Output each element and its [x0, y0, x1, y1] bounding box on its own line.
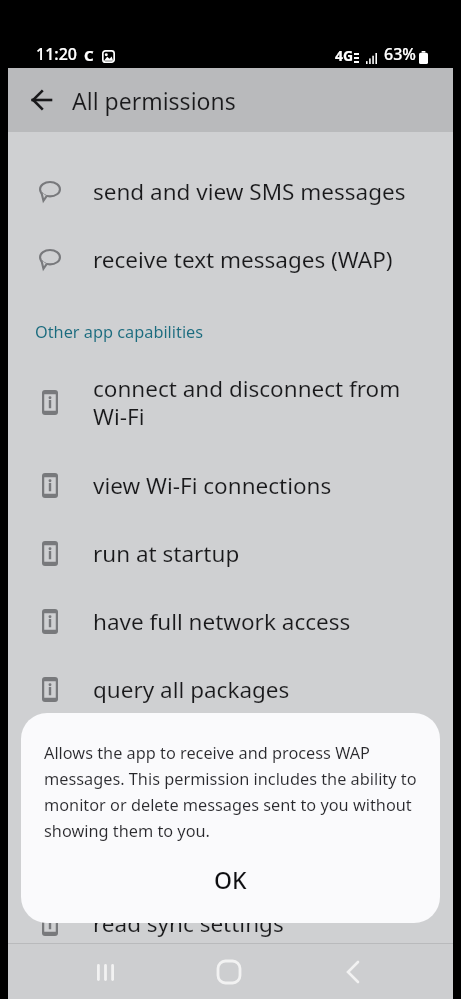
- staticText: view Wi-Fi connections: [93, 470, 332, 501]
- button[interactable]: Back: [17, 76, 65, 124]
- button[interactable]: OK: [21, 856, 440, 902]
- staticText: receive text messages (WAP): [93, 244, 393, 275]
- staticText: read sync settings: [93, 840, 284, 871]
- staticText: OK: [214, 864, 247, 895]
- staticText: 63%: [384, 43, 416, 65]
- staticText: query all packages: [93, 674, 290, 705]
- staticText: All permissions: [72, 85, 236, 116]
- button[interactable]: run at startup: [8, 519, 453, 587]
- staticText: Allows the app to receive and process WA…: [44, 742, 422, 842]
- button[interactable]: receive text messages (WAP): [8, 225, 453, 293]
- staticText: C: [84, 45, 94, 65]
- staticText: 4G: [335, 46, 354, 65]
- staticText: read sync settings: [93, 908, 284, 939]
- button[interactable]: have full network access: [8, 587, 453, 655]
- button[interactable]: Recents: [81, 948, 129, 996]
- button[interactable]: view Wi-Fi connections: [8, 451, 453, 519]
- button[interactable]: connect and disconnect from Wi-Fi: [8, 354, 453, 450]
- button[interactable]: Home: [205, 948, 253, 996]
- staticText: send and view SMS messages: [93, 176, 406, 207]
- button[interactable]: query all packages: [8, 655, 453, 723]
- staticText: connect and disconnect from Wi-Fi: [93, 373, 401, 431]
- button[interactable]: send and view SMS messages: [8, 157, 453, 225]
- staticText: run at startup: [93, 538, 240, 569]
- button[interactable]: Back: [329, 948, 377, 996]
- button[interactable]: read sync settings: [8, 889, 453, 957]
- staticText: Other app capabilities: [35, 321, 204, 343]
- button[interactable]: read sync settings: [8, 821, 453, 889]
- staticText: 11:20: [36, 43, 77, 65]
- staticText: have full network access: [93, 606, 351, 637]
